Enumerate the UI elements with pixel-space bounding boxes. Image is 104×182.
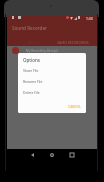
button[interactable]: My Recording 44.mp4	[7, 46, 97, 55]
staticText: CANCEL	[68, 104, 81, 109]
staticText: 1:33	[86, 16, 93, 21]
button[interactable]: Delete File	[18, 87, 86, 98]
button[interactable]: Rename File	[18, 76, 86, 87]
button[interactable]: CANCEL	[66, 103, 83, 110]
button[interactable]: Share File	[18, 65, 86, 76]
staticText: Options	[23, 57, 41, 63]
button[interactable]: Home	[46, 149, 58, 161]
staticText: Rename File	[23, 79, 43, 84]
button[interactable]: Back	[26, 149, 38, 161]
button[interactable]: Recents	[66, 149, 78, 161]
button[interactable]: SAVED RECORDINGS	[54, 37, 91, 46]
staticText: Delete File	[23, 90, 40, 95]
staticText: My Recording 44.mp4	[26, 49, 58, 53]
staticText: Sound Recorder	[12, 25, 48, 31]
staticText: SAVED RECORDINGS	[57, 40, 89, 44]
staticText: Share File	[23, 68, 39, 73]
